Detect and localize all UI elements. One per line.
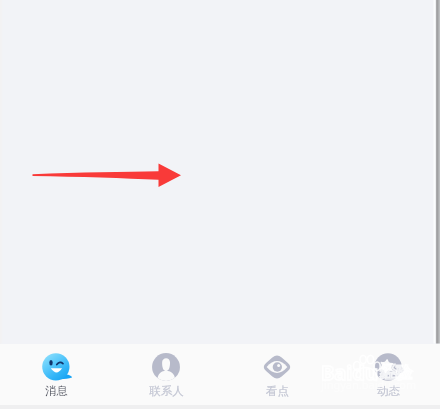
staticText: 经验 xyxy=(380,363,412,383)
staticText: Baidu xyxy=(321,359,378,386)
staticText: 动态 xyxy=(377,384,400,398)
button[interactable]: Discover xyxy=(222,344,332,405)
staticText: jingyan.baidu.com xyxy=(321,377,417,392)
staticText: 联系人 xyxy=(149,384,184,398)
staticText: 消息 xyxy=(45,384,68,398)
button[interactable]: Moments xyxy=(333,344,440,405)
staticText: 看点 xyxy=(266,384,289,398)
button[interactable]: Messages xyxy=(1,344,111,405)
button[interactable]: Contacts xyxy=(111,344,221,405)
